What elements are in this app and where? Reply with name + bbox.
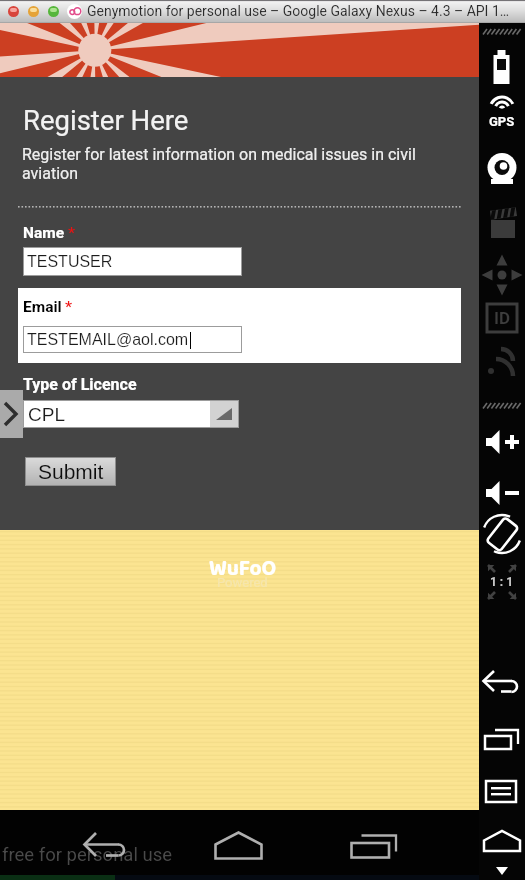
button[interactable]: Home <box>213 829 265 863</box>
button[interactable]: Network <box>479 337 525 389</box>
button[interactable]: Back <box>80 821 136 861</box>
button[interactable]: TESTUSER <box>24 248 241 275</box>
button[interactable]: Open drawer <box>0 390 23 438</box>
staticText: 1 : 1 <box>490 575 514 589</box>
staticText: GPS <box>489 114 515 129</box>
staticText: * <box>68 224 76 242</box>
staticText: Powered <box>217 575 268 590</box>
button[interactable]: Back <box>479 656 525 708</box>
staticText: ID <box>494 308 511 328</box>
button[interactable]: Submit <box>26 458 115 485</box>
button[interactable]: Volume down <box>479 468 525 520</box>
staticText: Submit <box>38 460 104 483</box>
button[interactable]: Window button <box>48 6 59 17</box>
button[interactable]: Camera <box>479 143 525 195</box>
staticText: Register for latest information on medic… <box>22 145 422 183</box>
button[interactable]: Rotate screen <box>479 509 525 561</box>
staticText: TESTUSER <box>27 253 113 271</box>
staticText: WuFoO <box>209 552 277 586</box>
staticText: free for personal use <box>2 844 173 866</box>
button[interactable]: Video recorder <box>479 198 525 250</box>
button[interactable]: Device ID <box>479 295 525 341</box>
button[interactable]: Volume up <box>479 417 525 469</box>
button[interactable]: GPS <box>479 93 525 145</box>
staticText: TESTEMAIL@aol.com <box>27 331 189 349</box>
staticText: Name <box>23 224 65 242</box>
button[interactable]: Menu <box>479 769 525 821</box>
button[interactable]: Battery <box>479 42 525 94</box>
button[interactable]: Window button <box>8 6 19 17</box>
button[interactable]: More options <box>479 858 525 880</box>
button[interactable]: CPL <box>24 401 238 427</box>
button[interactable]: TESTEMAIL@aol.com <box>24 327 241 352</box>
button[interactable]: 1:1 scale <box>479 559 525 605</box>
staticText: CPL <box>28 404 65 425</box>
staticText: Type of Licence <box>23 375 137 394</box>
staticText: Register Here <box>23 104 189 136</box>
button[interactable]: D-pad <box>479 249 525 301</box>
button[interactable]: Recent apps <box>479 719 525 771</box>
button[interactable]: Window button <box>28 6 39 17</box>
button[interactable]: Home <box>479 818 525 870</box>
staticText: Email <box>23 298 62 316</box>
button[interactable]: Recent apps <box>349 832 399 862</box>
staticText: Genymotion for personal use – Google Gal… <box>87 3 510 19</box>
staticText: * <box>65 298 73 316</box>
